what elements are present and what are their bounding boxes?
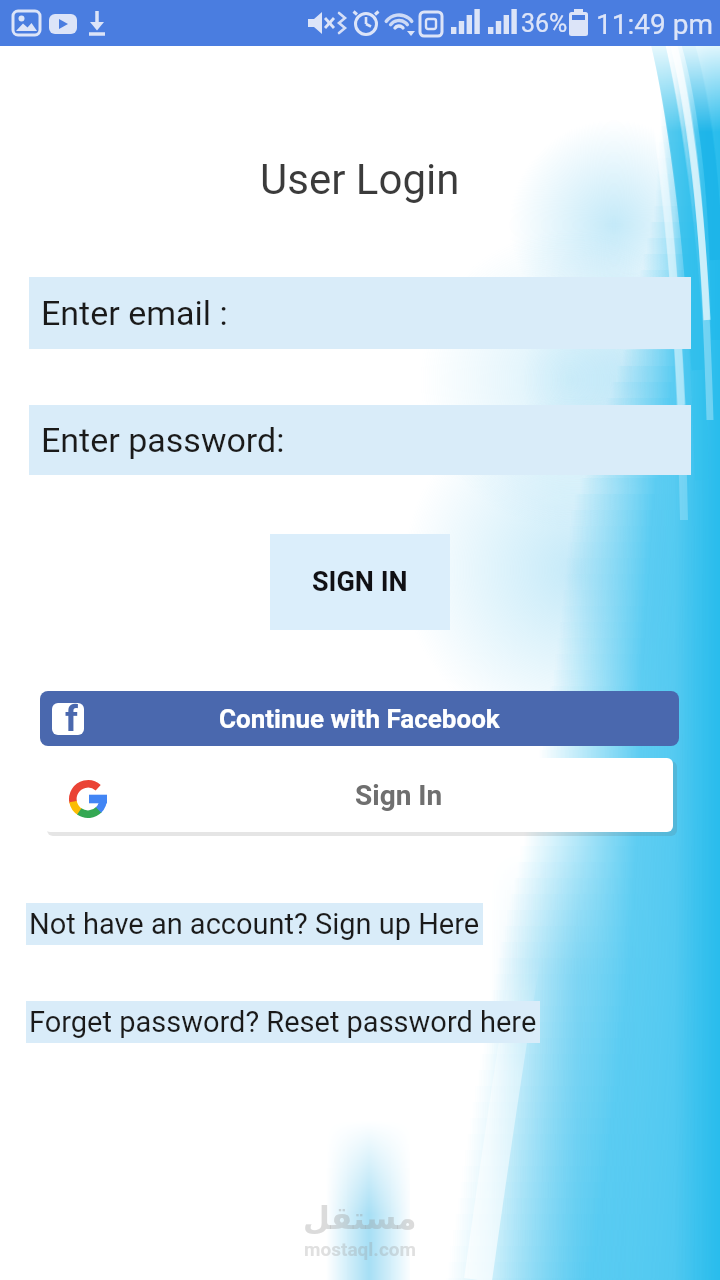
button[interactable]: Enter email :: [29, 277, 691, 349]
staticText: SIGN IN: [312, 566, 408, 598]
staticText: مستقل: [303, 1200, 417, 1236]
button[interactable]: SIGN IN: [270, 534, 450, 630]
staticText: 11:49 pm: [596, 8, 713, 41]
staticText: Sign In: [355, 779, 443, 812]
button[interactable]: Not have an account? Sign up Here: [26, 903, 483, 945]
staticText: Not have an account? Sign up Here: [29, 907, 480, 941]
staticText: Continue with Facebook: [219, 704, 500, 734]
button[interactable]: Sign In: [44, 758, 673, 832]
button[interactable]: Enter password:: [29, 405, 691, 475]
staticText: f: [65, 703, 78, 731]
button[interactable]: f: [40, 691, 679, 746]
staticText: Forget password? Reset password here: [29, 1005, 537, 1039]
button[interactable]: Forget password? Reset password here: [26, 1001, 540, 1043]
staticText: mostaql.com: [304, 1238, 416, 1260]
staticText: User Login: [260, 155, 460, 204]
staticText: 36%: [521, 9, 568, 38]
staticText: Enter password:: [41, 420, 285, 460]
staticText: Enter email :: [41, 293, 228, 333]
